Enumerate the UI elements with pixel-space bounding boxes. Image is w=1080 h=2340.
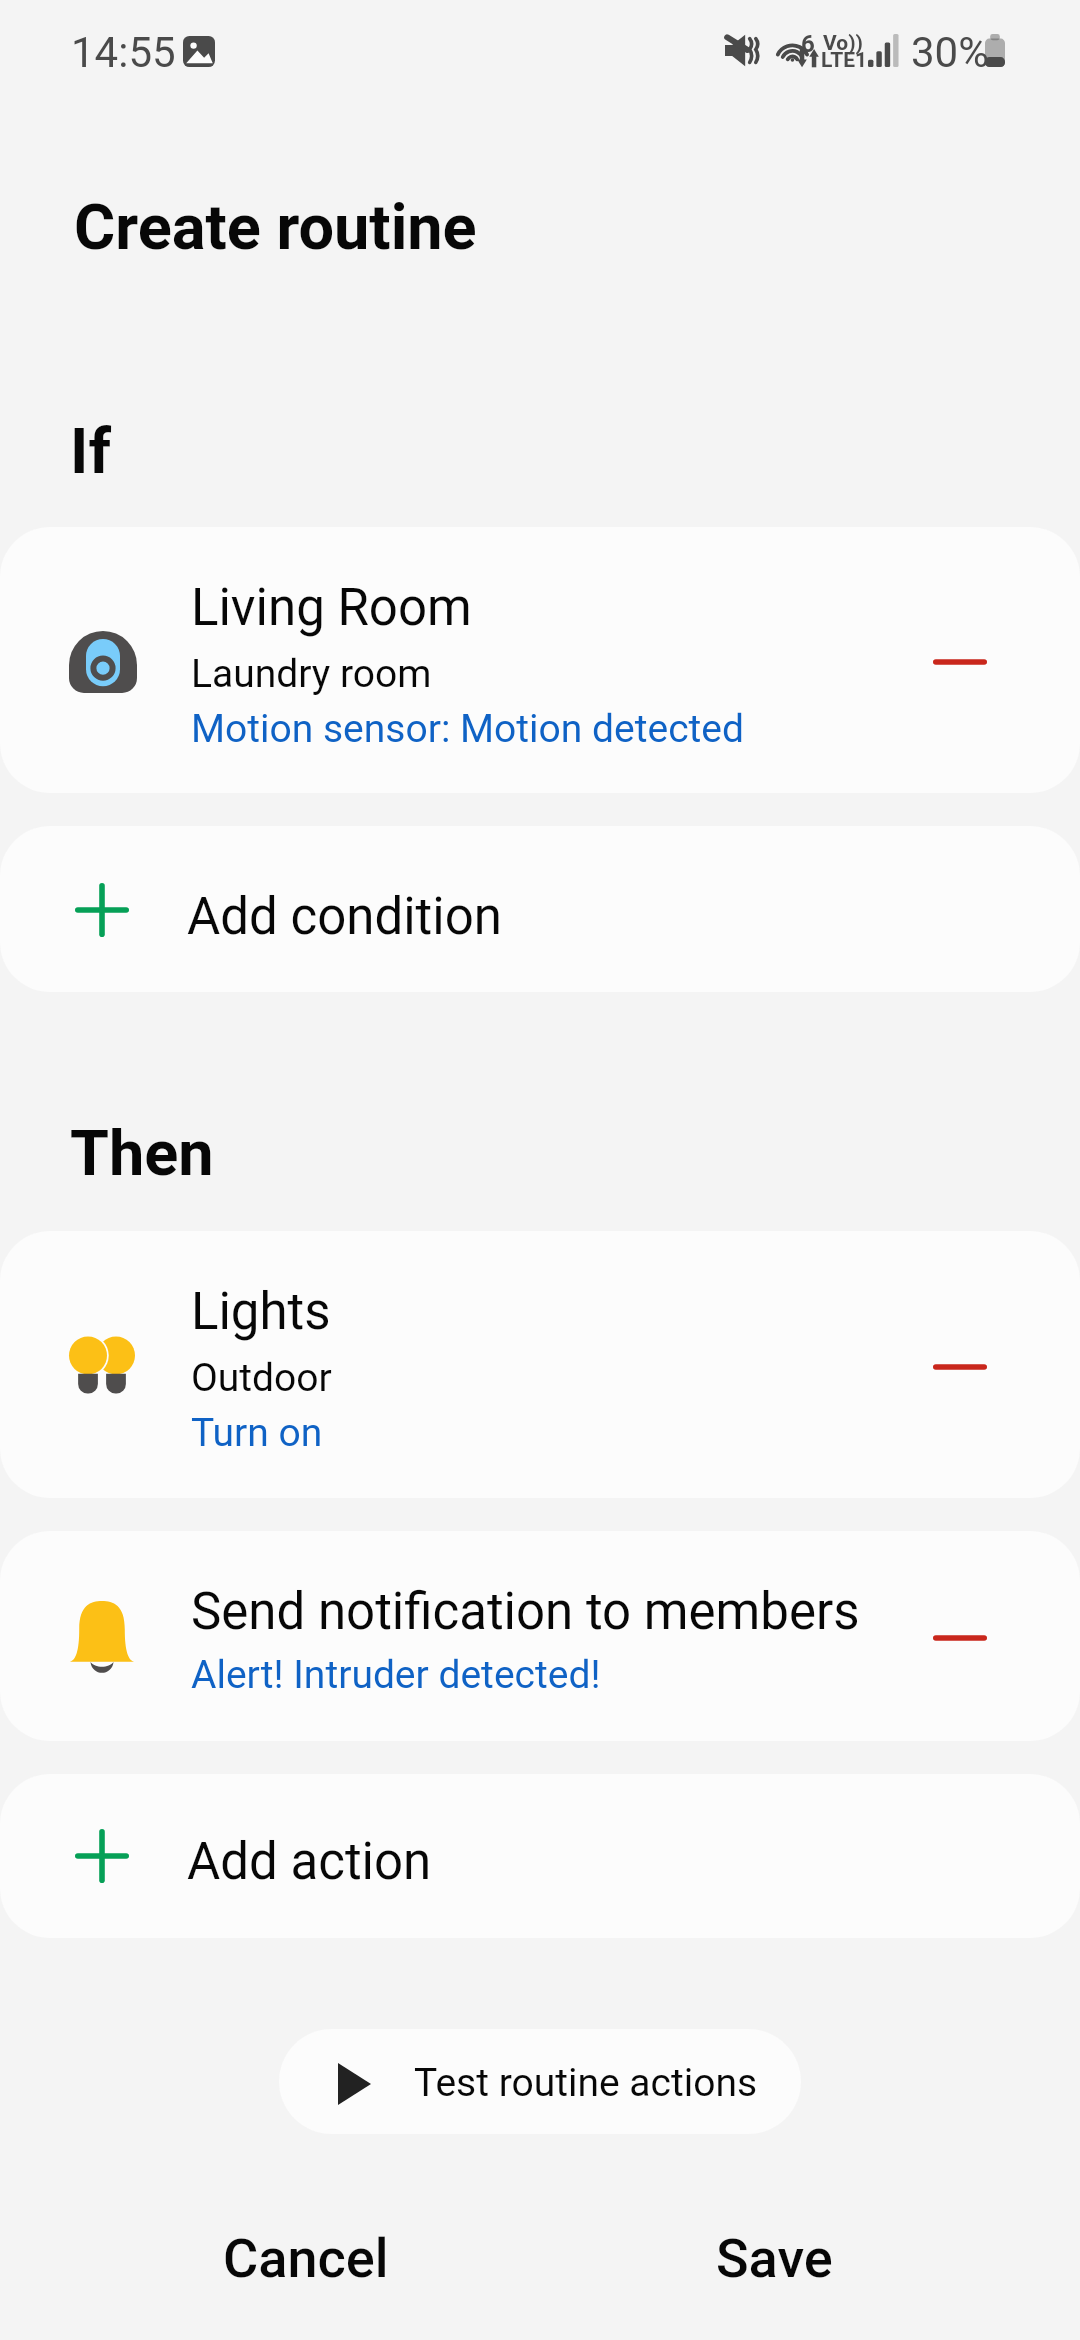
button[interactable]: Lights: [0, 1231, 1080, 1498]
button[interactable]: Remove: [924, 624, 996, 696]
staticText: Test routine actions: [414, 2060, 758, 2106]
button[interactable]: Add condition: [0, 826, 1080, 992]
button[interactable]: Remove: [924, 1600, 996, 1672]
button[interactable]: Add action: [0, 1774, 1080, 1938]
staticText: Add condition: [187, 887, 502, 947]
staticText: If: [70, 415, 111, 489]
button[interactable]: Send notification to members: [0, 1531, 1080, 1741]
staticText: Create routine: [74, 191, 477, 265]
staticText: Laundry room: [191, 651, 432, 697]
staticText: Send notification to members: [191, 1582, 860, 1642]
staticText: Save: [716, 2227, 833, 2290]
button[interactable]: Save: [540, 2203, 1080, 2313]
button[interactable]: Test routine actions: [279, 2029, 801, 2134]
staticText: Cancel: [223, 2227, 389, 2290]
staticText: Turn on: [191, 1410, 323, 1456]
staticText: 14:55: [71, 28, 176, 77]
staticText: Then: [70, 1117, 214, 1191]
staticText: Outdoor: [191, 1355, 332, 1401]
button[interactable]: Cancel: [0, 2203, 540, 2313]
staticText: Vo)): [823, 31, 863, 56]
staticText: 6: [801, 30, 815, 58]
staticText: Lights: [191, 1282, 331, 1342]
staticText: Living Room: [191, 578, 472, 638]
staticText: Alert! Intruder detected!: [191, 1652, 601, 1698]
staticText: Add action: [187, 1832, 432, 1892]
staticText: LTE1: [821, 48, 868, 73]
staticText: Motion sensor: Motion detected: [191, 706, 744, 752]
button[interactable]: Remove: [924, 1329, 996, 1401]
button[interactable]: Living Room: [0, 527, 1080, 793]
staticText: 30%: [911, 28, 989, 77]
